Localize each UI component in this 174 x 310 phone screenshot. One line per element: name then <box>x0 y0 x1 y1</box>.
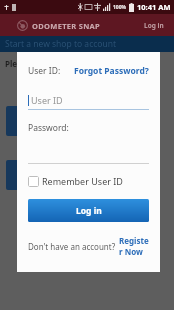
staticText: Log in <box>144 21 164 30</box>
staticText: 100% <box>113 4 127 11</box>
button[interactable] <box>28 148 149 164</box>
staticText: Forgot Password? <box>74 65 149 77</box>
staticText: Register Now <box>119 235 149 257</box>
staticText: Remember User ID <box>42 175 123 187</box>
button[interactable]: User ID <box>28 90 149 110</box>
staticText: Log in <box>76 205 102 217</box>
staticText: Please <box>5 58 31 69</box>
staticText: User ID <box>31 94 63 106</box>
button[interactable]: Log in <box>28 199 149 222</box>
staticText: 10:41 AM <box>137 2 171 12</box>
button[interactable]: Remember User ID <box>28 175 123 187</box>
staticText: ODOMETER SNAP <box>32 21 101 31</box>
staticText: User ID: <box>28 65 61 77</box>
staticText: Password: <box>28 122 69 134</box>
button[interactable]: Register Now <box>119 235 149 257</box>
button[interactable]: Forgot Password? <box>74 65 149 77</box>
button[interactable]: Log in <box>144 21 164 30</box>
staticText: Don't have an account? <box>28 241 116 252</box>
staticText: Start a new shop to account <box>5 38 117 50</box>
